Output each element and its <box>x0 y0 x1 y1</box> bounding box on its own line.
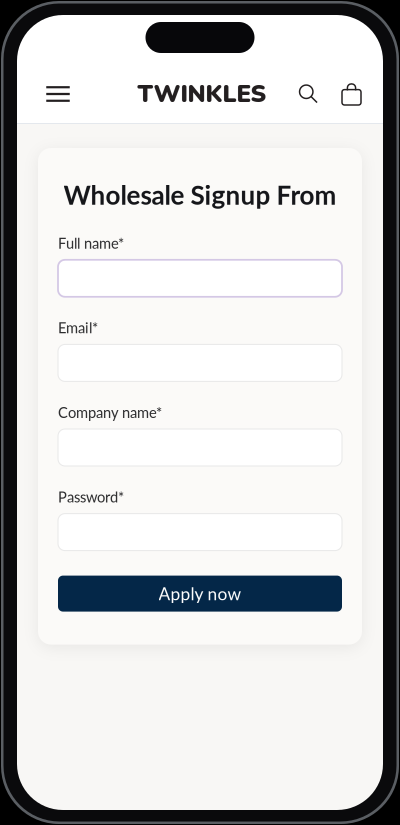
staticText: Company name* <box>58 403 162 421</box>
staticText: Email* <box>58 319 98 336</box>
staticText: Password* <box>58 488 124 506</box>
button[interactable]: Shopping bag <box>339 74 364 114</box>
button[interactable] <box>58 344 342 381</box>
staticText: Full name* <box>58 234 124 252</box>
staticText: Apply now <box>158 583 241 604</box>
button[interactable] <box>58 514 342 551</box>
button[interactable]: Menu <box>40 74 76 114</box>
button[interactable] <box>58 260 342 297</box>
staticText: TWINKLES <box>137 78 266 110</box>
button[interactable]: Apply now <box>58 576 342 612</box>
staticText: Wholesale Signup From <box>63 179 336 210</box>
button[interactable]: Search <box>296 74 321 114</box>
